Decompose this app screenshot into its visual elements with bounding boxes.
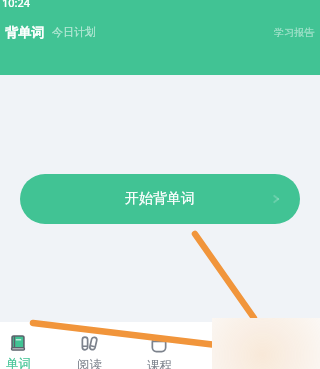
staticText: 阅读 (77, 357, 102, 369)
staticText: 今日计划 (52, 25, 96, 39)
button[interactable]: 测试 (200, 322, 260, 369)
button[interactable]: 单词 (0, 322, 48, 369)
button[interactable]: 课程 (129, 322, 189, 369)
staticText: 10:24 (2, 0, 31, 10)
button[interactable]: 开始背单词 (20, 174, 300, 224)
button[interactable]: 阅读 (59, 322, 119, 369)
staticText: 开始背单词 (125, 190, 195, 208)
staticText: 背单词 (5, 24, 44, 40)
staticText: 学习报告 (274, 26, 314, 39)
staticText: 课程 (147, 358, 172, 369)
staticText: 单词 (6, 356, 31, 369)
